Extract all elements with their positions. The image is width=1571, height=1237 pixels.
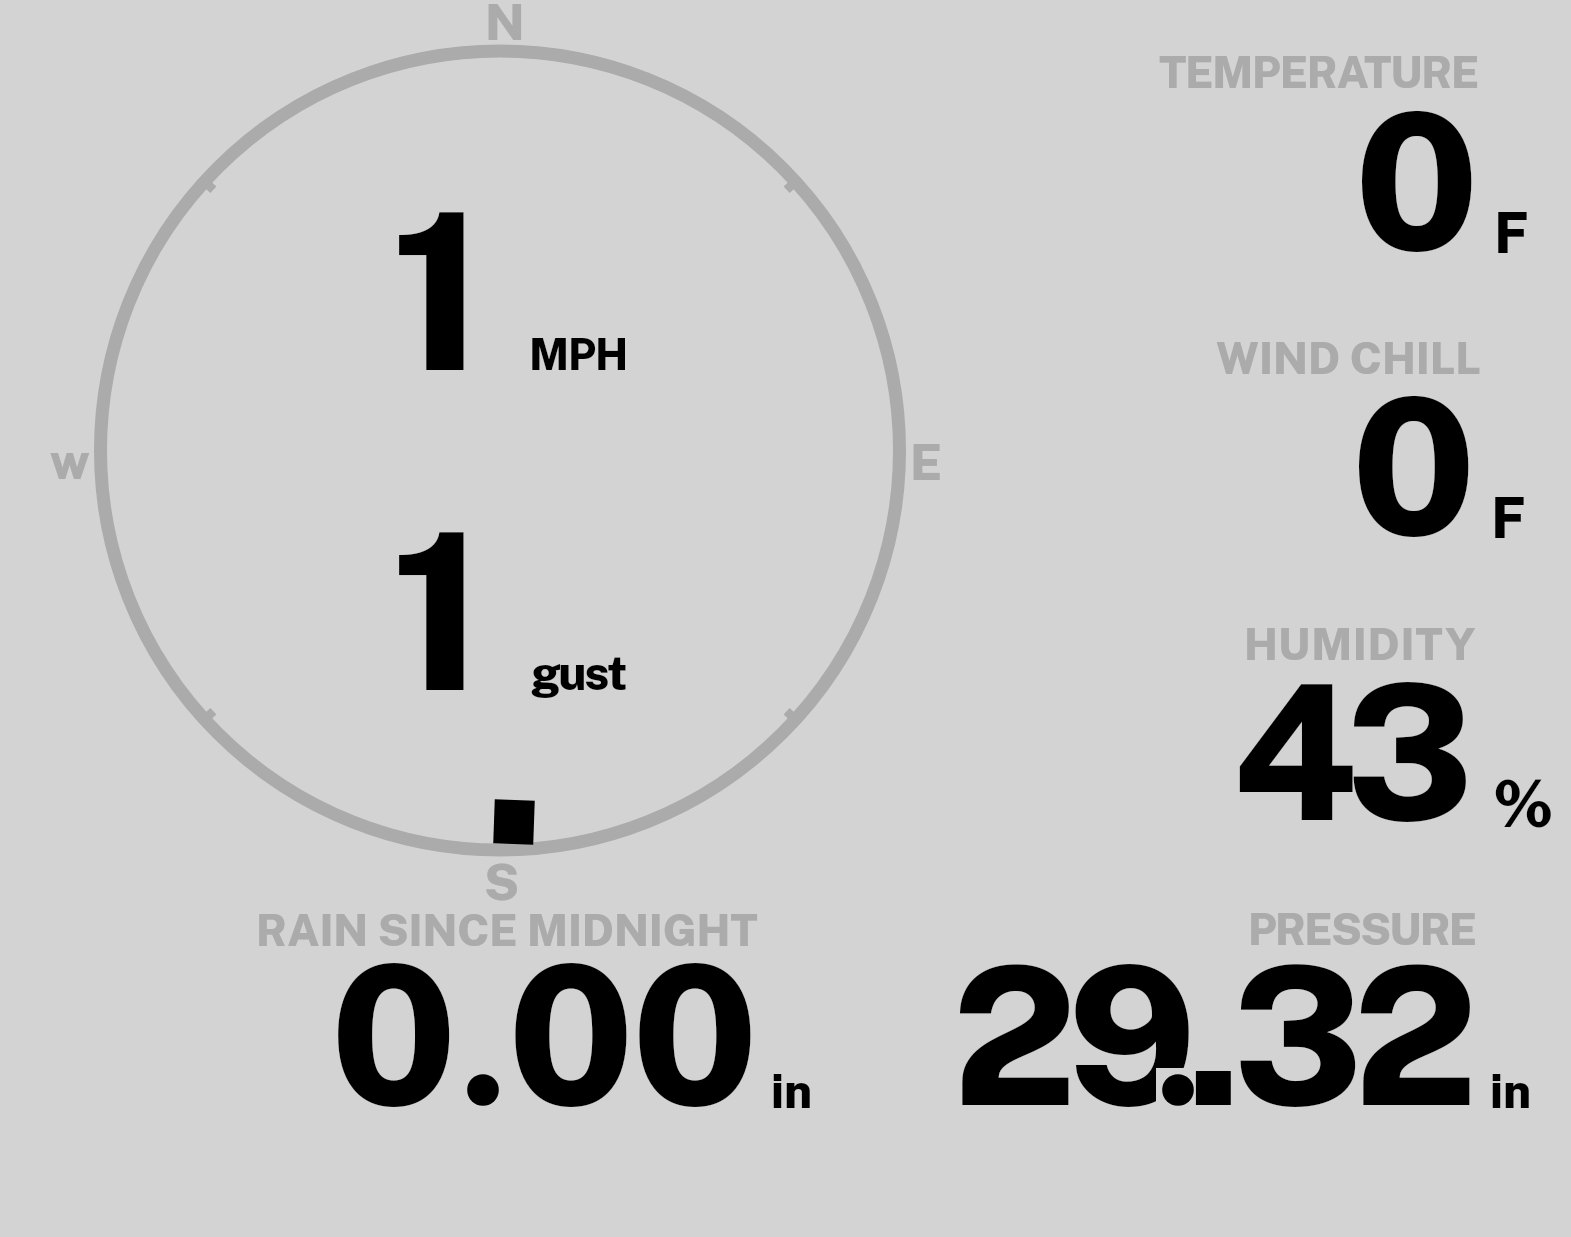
staticText: gust — [531, 645, 626, 700]
staticText: % — [1493, 766, 1555, 841]
staticText: RAIN SINCE MIDNIGHT — [256, 904, 758, 956]
staticText: MPH — [529, 329, 628, 380]
staticText: in — [771, 1063, 813, 1118]
staticText: 1 — [390, 163, 486, 419]
staticText: 0.00 — [330, 922, 756, 1149]
staticText: 1 — [390, 483, 486, 739]
staticText: TEMPERATURE — [1159, 46, 1478, 98]
staticText: 43 — [1232, 641, 1462, 862]
staticText: 0 — [1351, 354, 1477, 577]
staticText: WIND CHILL — [1216, 332, 1481, 384]
button[interactable]: Wind direction compass — [0, 0, 1571, 1237]
staticText: 29.32 — [952, 923, 1469, 1149]
staticText: 0 — [1354, 69, 1480, 292]
staticText: F — [1491, 485, 1526, 551]
staticText: N — [485, 0, 525, 51]
staticText: F — [1494, 200, 1529, 266]
staticText: S — [484, 852, 520, 911]
staticText: PRESSURE — [1248, 903, 1476, 955]
staticText: w — [50, 431, 90, 490]
staticText: in — [1490, 1063, 1532, 1118]
staticText: E — [910, 432, 943, 491]
staticText: HUMIDITY — [1244, 618, 1477, 670]
